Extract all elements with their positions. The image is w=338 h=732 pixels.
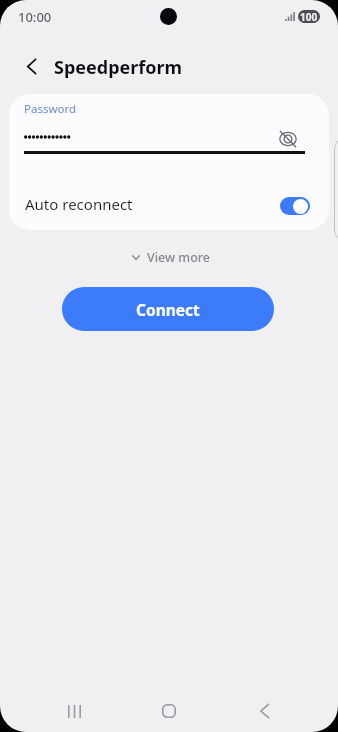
button[interactable]: View more	[126, 245, 217, 270]
staticText: Connect	[136, 299, 200, 320]
button[interactable]: Recent apps	[52, 691, 97, 731]
staticText: View more	[147, 249, 211, 266]
staticText: Speedperform	[54, 55, 183, 80]
button[interactable]: Connect	[62, 287, 274, 331]
button[interactable]: Back	[15, 50, 48, 83]
staticText: Auto reconnect	[25, 194, 133, 214]
button[interactable]: Back	[242, 691, 286, 731]
staticText: 10:00	[18, 8, 52, 26]
staticText: 100	[300, 10, 318, 23]
staticText: Password	[24, 101, 77, 117]
button[interactable]: Auto reconnect	[9, 186, 329, 226]
button[interactable]: Show password	[275, 126, 301, 152]
button[interactable]: Home	[147, 691, 191, 731]
